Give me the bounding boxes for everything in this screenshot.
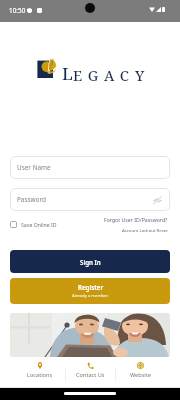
staticText: Register [78,283,104,291]
button[interactable]: Register [10,278,170,304]
button[interactable]: Locations [15,360,65,388]
staticText: 10:50 [9,6,26,15]
button[interactable]: Contact Us [66,360,115,388]
staticText: L [62,62,73,85]
staticText: Password [17,195,46,204]
staticText: Y [135,65,145,85]
button[interactable]: Account Lockout Reset [122,227,168,233]
button[interactable] [10,313,170,357]
button[interactable]: User Name [10,156,170,179]
staticText: Contact Us [76,371,105,379]
staticText: Already a member [72,293,109,299]
button[interactable]: Show password [151,194,163,206]
staticText: Locations [27,371,53,379]
staticText: EGAC [73,65,135,85]
staticText: Website [130,371,151,379]
staticText: Save Online ID [21,221,57,228]
staticText: Sign In [80,258,101,266]
button[interactable]: Password [10,188,170,211]
button[interactable]: Forgot User ID/Password? [104,216,168,223]
staticText: User Name [17,163,51,172]
button[interactable]: Sign In [10,250,170,273]
button[interactable]: Website [116,360,165,388]
button[interactable]: Save Online ID [10,221,57,228]
